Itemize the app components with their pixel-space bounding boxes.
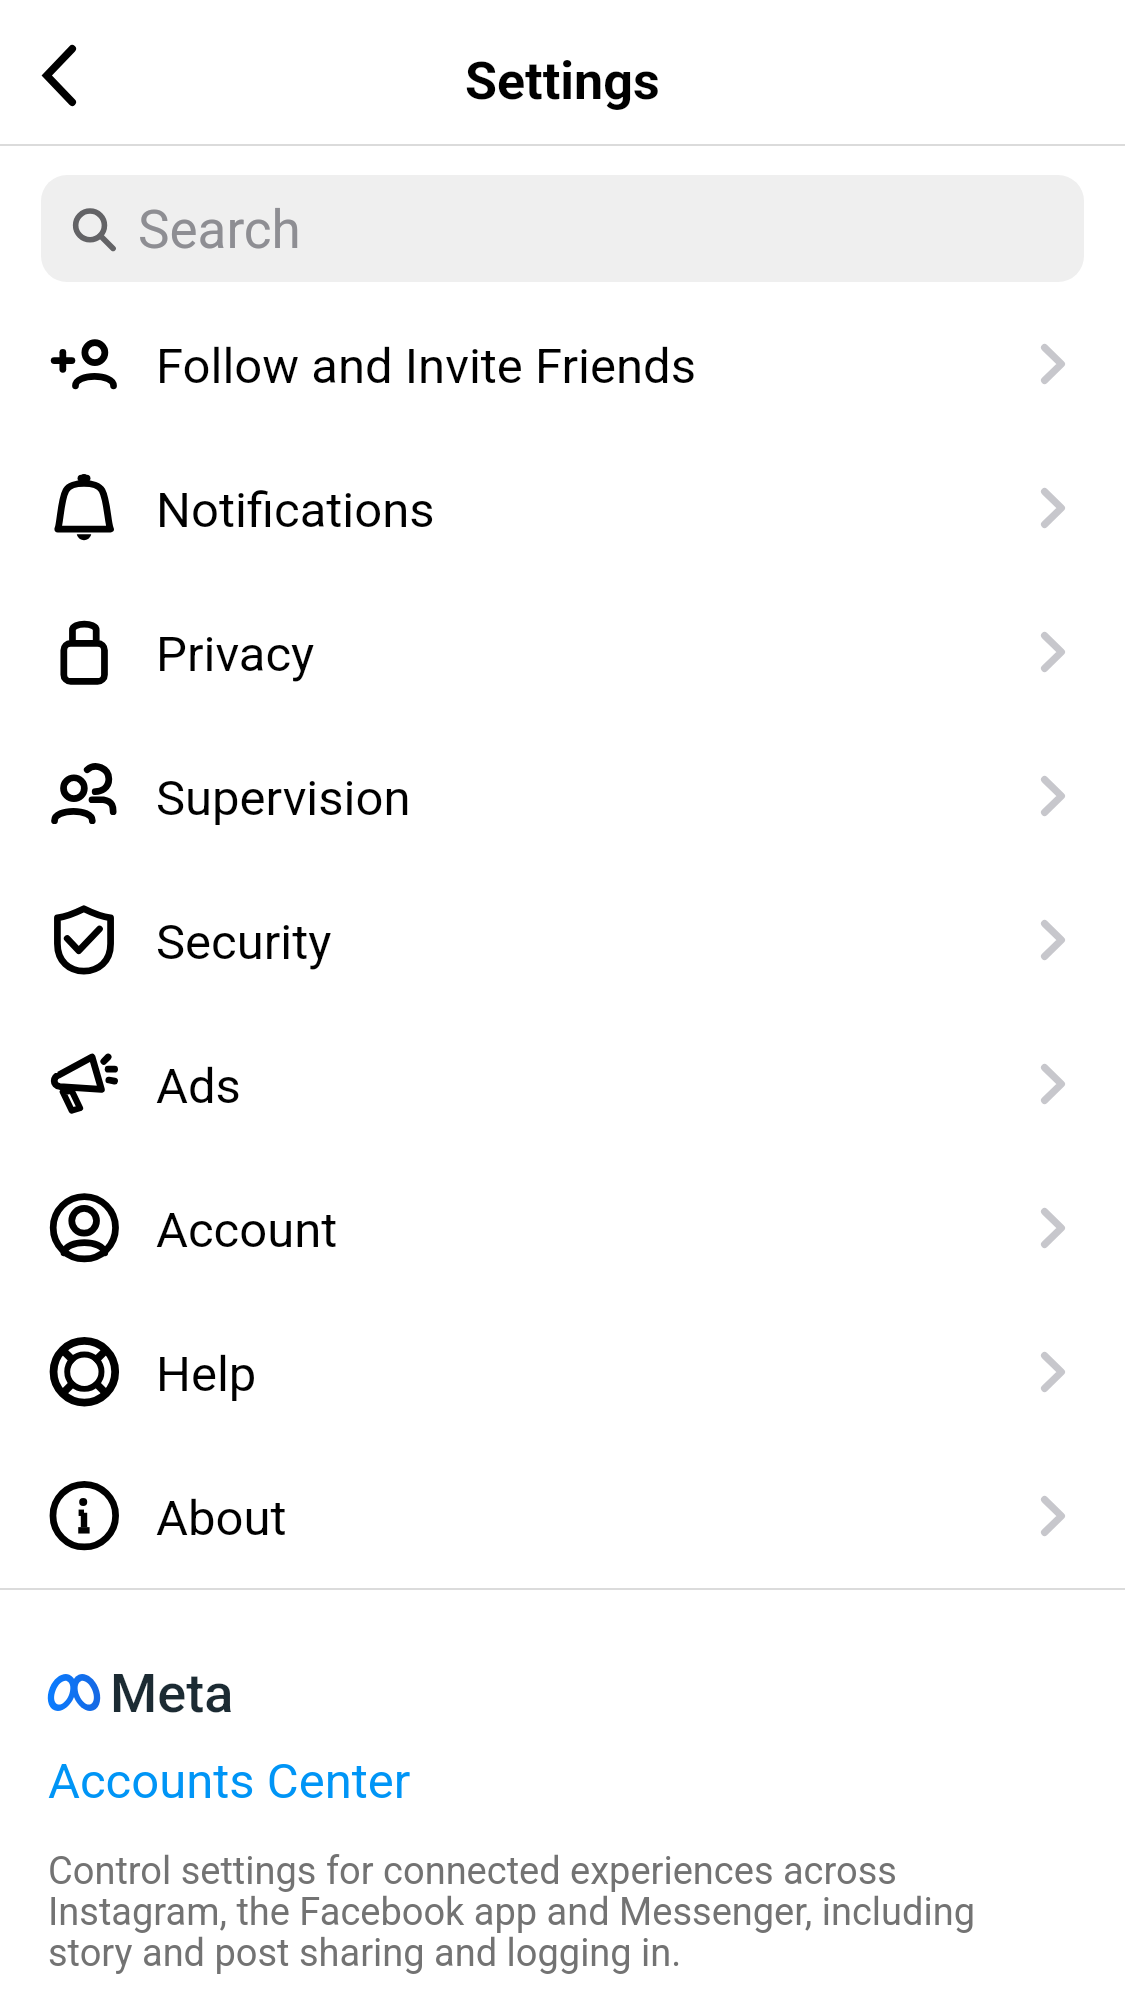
button[interactable]: Ads	[0, 1012, 1125, 1156]
button[interactable]: Accounts Center	[48, 1753, 411, 1810]
button[interactable]: Supervision	[0, 724, 1125, 868]
staticText: About	[156, 1490, 287, 1547]
staticText: Help	[156, 1346, 257, 1403]
button[interactable]: Privacy	[0, 580, 1125, 724]
staticText: Notifications	[156, 482, 435, 539]
staticText: Search	[138, 199, 301, 261]
staticText: Supervision	[156, 770, 411, 827]
button[interactable]: Search	[41, 175, 1084, 282]
staticText: Settings	[465, 51, 660, 112]
button[interactable]: Notifications	[0, 436, 1125, 580]
button[interactable]: About	[0, 1444, 1125, 1588]
staticText: Control settings for connected experienc…	[48, 1849, 1000, 1976]
button[interactable]: Account	[0, 1156, 1125, 1300]
staticText: Security	[156, 914, 332, 971]
staticText: Account	[156, 1202, 338, 1259]
button[interactable]: Security	[0, 868, 1125, 1012]
button[interactable]: Help	[0, 1300, 1125, 1444]
staticText: Follow and Invite Friends	[156, 338, 696, 395]
staticText: Privacy	[156, 626, 315, 683]
staticText: Meta	[110, 1662, 234, 1725]
button[interactable]: Back	[0, 16, 118, 134]
button[interactable]: Follow and Invite Friends	[0, 292, 1125, 436]
staticText: Ads	[156, 1058, 241, 1115]
